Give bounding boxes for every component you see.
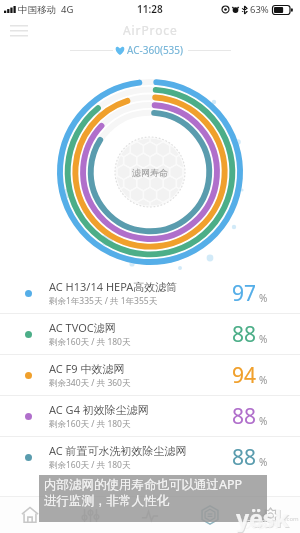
staticText: % [259, 414, 268, 428]
staticText: 11:28 [137, 2, 163, 16]
staticText: AC 前置可水洗初效除尘滤网 [49, 443, 187, 458]
staticText: 剩余160天 / 共 180天 [49, 418, 131, 430]
button[interactable]: AC 前置可水洗初效除尘滤网 [0, 437, 300, 477]
staticText: 进行监测，非常人性化 [44, 493, 169, 509]
staticText: yësky [236, 502, 298, 532]
staticText: yësky [237, 503, 299, 533]
staticText: % [259, 332, 268, 346]
button[interactable]: Menu [4, 18, 34, 42]
staticText: 剩余1年335天 / 共 1年355天 [49, 295, 158, 307]
staticText: 中国移动 [18, 4, 56, 16]
button[interactable]: Home [0, 497, 60, 533]
button[interactable]: AC F9 中效滤网 [0, 355, 300, 395]
staticText: 88 [232, 402, 257, 431]
staticText: .com [285, 515, 299, 523]
staticText: 内部滤网的使用寿命也可以通过APP [44, 476, 243, 493]
staticText: 88 [232, 320, 257, 349]
staticText: AirProce [123, 22, 178, 38]
button[interactable]: Mode [60, 497, 120, 533]
staticText: % [259, 373, 268, 387]
staticText: AC-360(535) [127, 43, 184, 57]
staticText: 剩余340天 / 共 360天 [49, 377, 131, 389]
staticText: 4G [61, 3, 74, 16]
staticText: 63% [250, 3, 269, 16]
button[interactable]: Settings [240, 497, 300, 533]
staticText: 滤网寿命 [132, 167, 168, 178]
staticText: 94 [232, 361, 257, 390]
staticText: 天极网 [246, 518, 280, 531]
staticText: % [259, 291, 268, 305]
staticText: 剩余160天 / 共 180天 [49, 336, 131, 348]
button[interactable]: Statistics [120, 497, 180, 533]
button[interactable]: AC G4 初效除尘滤网 [0, 396, 300, 436]
staticText: 剩余160天 / 共 180天 [49, 459, 131, 471]
staticText: 88 [232, 443, 257, 472]
button[interactable]: AC TVOC滤网 [0, 314, 300, 354]
staticText: 97 [232, 279, 257, 308]
staticText: AC F9 中效滤网 [49, 361, 125, 376]
staticText: AC TVOC滤网 [49, 320, 116, 335]
staticText: % [259, 455, 268, 469]
button[interactable]: AC H13/14 HEPA高效滤筒 [0, 273, 300, 313]
button[interactable]: Filter [180, 497, 240, 533]
staticText: AC H13/14 HEPA高效滤筒 [49, 279, 178, 294]
staticText: AC G4 初效除尘滤网 [49, 402, 149, 417]
